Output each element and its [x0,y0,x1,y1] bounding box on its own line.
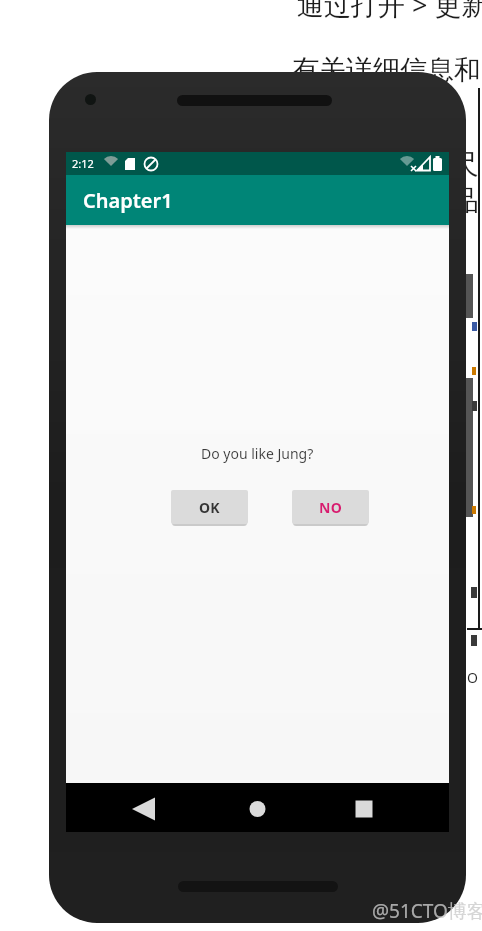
staticText: 尺 [451,147,479,182]
button[interactable] [119,784,167,832]
button[interactable]: OK [171,490,248,524]
button[interactable] [233,784,281,832]
staticText: 品 [451,183,479,218]
staticText: O [467,668,478,687]
staticText: 有关详细信息和 [292,53,481,87]
staticText: 2:12 [72,156,94,171]
button[interactable] [340,784,388,832]
button[interactable]: Chapter1 [66,175,449,225]
staticText: Chapter1 [83,187,173,214]
staticText: @51CTO博客 [372,898,482,924]
staticText: 通过打开 > 更新 [297,0,482,23]
staticText: Do you like Jung? [201,444,314,463]
staticText: NO [319,498,343,517]
staticText: OK [199,498,220,517]
button[interactable]: NO [292,490,369,524]
